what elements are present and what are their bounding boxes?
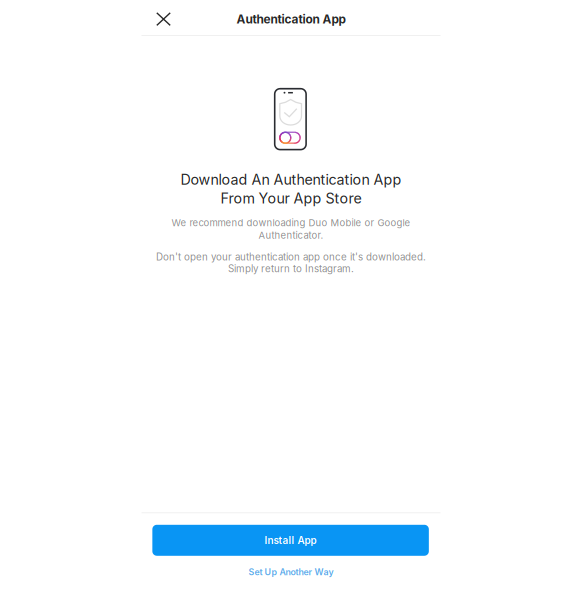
staticText: Simply return to Instagram. [228, 263, 354, 275]
button[interactable]: Set Up Another Way [248, 567, 333, 577]
staticText: Authenticator. [258, 229, 323, 241]
staticText: Install App [265, 534, 317, 546]
staticText: Download An Authentication App [180, 171, 401, 188]
staticText: Authentication App [236, 12, 345, 26]
staticText: We recommend downloading Duo Mobile or G… [171, 217, 410, 228]
button[interactable]: Close [148, 4, 178, 34]
staticText: Set Up Another Way [248, 567, 333, 577]
button[interactable]: Install App [152, 525, 429, 556]
staticText: From Your App Store [220, 190, 361, 207]
staticText: Don't open your authentication app once … [156, 251, 426, 263]
